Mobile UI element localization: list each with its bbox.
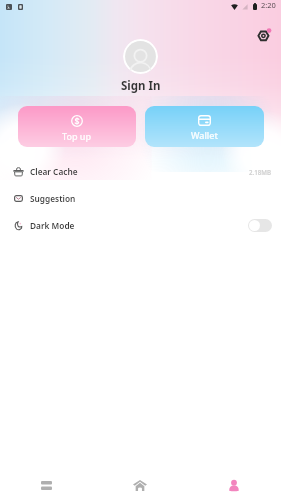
button[interactable]: Dark Mode toggle — [248, 219, 272, 232]
staticText: Sign In — [121, 78, 161, 94]
button[interactable] — [123, 39, 158, 74]
staticText: 2:20 — [261, 0, 276, 10]
button[interactable]: Top up — [18, 106, 136, 147]
staticText: Dark Mode — [30, 220, 75, 231]
staticText: Wallet — [191, 129, 218, 141]
button[interactable]: Home — [93, 471, 187, 500]
button[interactable]: Profile — [187, 471, 281, 500]
button[interactable]: List — [0, 471, 93, 500]
button[interactable]: Wallet — [145, 106, 264, 147]
button[interactable]: Clear Cache — [0, 158, 281, 185]
button[interactable]: Dark Mode — [0, 212, 281, 239]
button[interactable]: Settings — [255, 26, 272, 43]
staticText: Top up — [62, 130, 92, 142]
staticText: 2.18MB — [249, 168, 272, 176]
staticText: Clear Cache — [30, 166, 78, 177]
staticText: Suggestion — [30, 193, 76, 204]
button[interactable]: Suggestion — [0, 185, 281, 212]
